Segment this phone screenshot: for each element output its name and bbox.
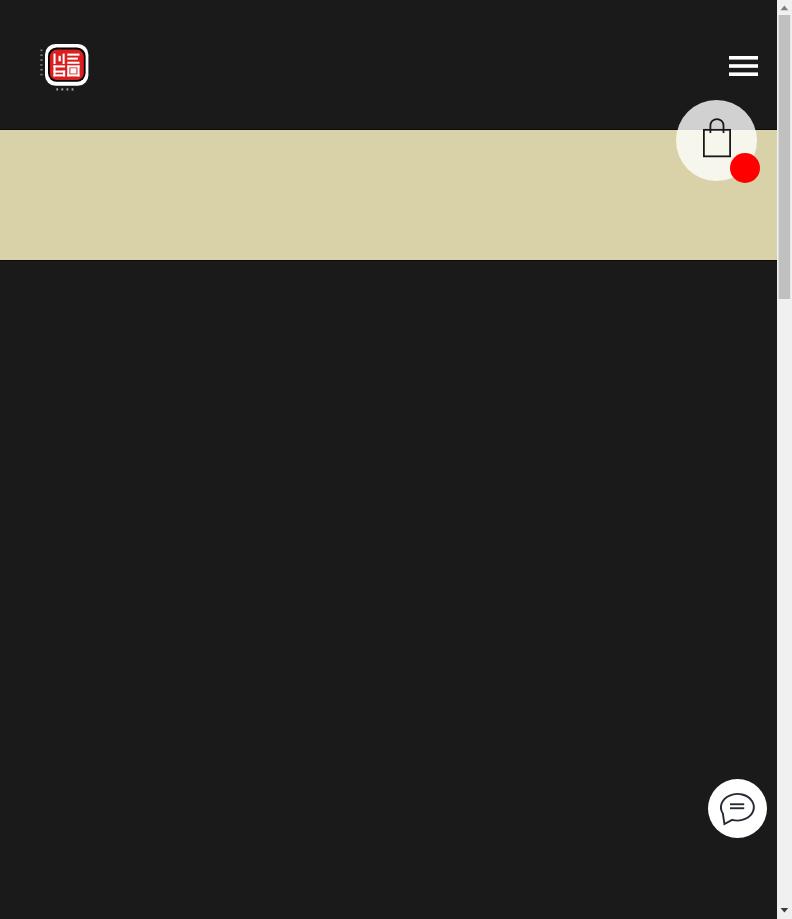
button[interactable]: Chat — [708, 779, 767, 838]
button[interactable]: Home — [36, 36, 96, 96]
button[interactable]: Cart — [676, 100, 757, 181]
button[interactable]: Menu — [719, 42, 767, 90]
